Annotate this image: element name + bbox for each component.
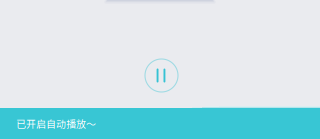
button[interactable]: Pause bbox=[145, 59, 178, 92]
staticText: 已开启自动播放～ bbox=[16, 116, 96, 131]
